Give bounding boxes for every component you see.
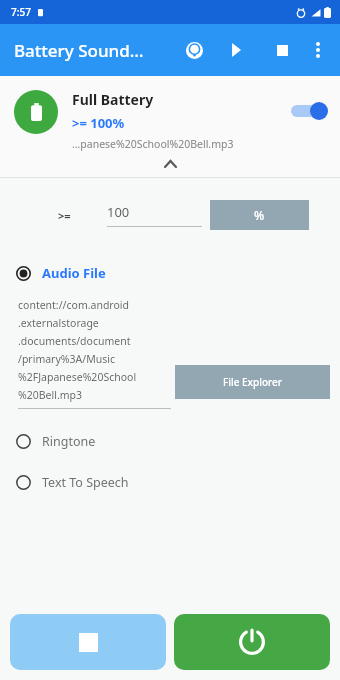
staticText: /primary%3A/Music — [18, 352, 115, 366]
button[interactable]: Stop — [266, 34, 298, 66]
button[interactable]: % — [210, 200, 309, 230]
staticText: >= 100% — [72, 114, 125, 132]
button[interactable]: Start service — [174, 614, 330, 670]
button[interactable]: Audio File — [0, 262, 340, 284]
staticText: >= — [58, 208, 71, 223]
staticText: .documents/document — [18, 334, 131, 348]
button[interactable]: Ringtone — [0, 431, 340, 452]
staticText: Battery Sound… — [14, 39, 144, 62]
staticText: .externalstorage — [18, 316, 99, 330]
staticText: 7:57 — [11, 5, 31, 19]
staticText: Audio File — [42, 264, 106, 282]
button[interactable]: Stop service — [10, 614, 166, 670]
button[interactable] — [288, 100, 328, 122]
button[interactable]: content://com.android — [18, 298, 171, 409]
button[interactable]: Help — [178, 34, 210, 66]
staticText: 100 — [107, 203, 130, 221]
button[interactable]: Text To Speech — [0, 472, 340, 493]
staticText: content://com.android — [18, 298, 130, 312]
button[interactable]: Play — [220, 34, 252, 66]
staticText: File Explorer — [223, 375, 283, 389]
staticText: % — [254, 207, 265, 223]
button[interactable]: Full Battery — [0, 76, 340, 151]
button[interactable]: More options — [302, 34, 334, 66]
staticText: %20Bell.mp3 — [18, 388, 82, 402]
staticText: %2FJapanese%20School — [18, 370, 137, 384]
staticText: Ringtone — [42, 433, 96, 450]
button[interactable] — [0, 151, 340, 177]
button[interactable]: File Explorer — [175, 365, 330, 399]
staticText: Full Battery — [72, 90, 154, 109]
button[interactable]: 100 — [107, 203, 202, 227]
staticText: …panese%20School%20Bell.mp3 — [72, 137, 234, 151]
staticText: Text To Speech — [42, 474, 129, 491]
